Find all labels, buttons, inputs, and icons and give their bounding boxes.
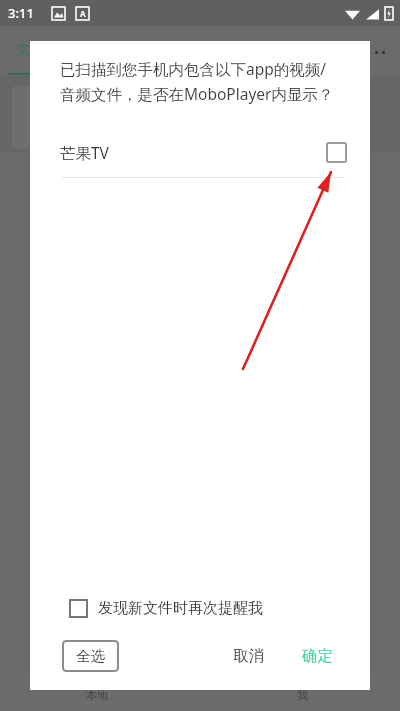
staticText: 已扫描到您手机内包含以下app的视频/ 音频文件，是否在MoboPlayer内显…	[60, 58, 334, 104]
staticText: 取消	[233, 646, 264, 666]
button[interactable]: 取消	[225, 640, 272, 672]
staticText: 发现新文件时再次提醒我	[98, 599, 263, 618]
staticText: 3:11	[8, 4, 34, 22]
other: 选择 芒果TV	[326, 142, 347, 163]
staticText: 确定	[302, 646, 333, 666]
staticText: 全选	[76, 647, 105, 665]
staticText: A	[80, 8, 86, 19]
button[interactable]: 发现新文件时再次提醒我	[30, 593, 370, 624]
button[interactable]: 芒果TV	[30, 127, 370, 177]
button[interactable]: 确定	[294, 640, 341, 672]
staticText: 本地	[86, 688, 108, 702]
button[interactable]: 全选	[62, 640, 119, 672]
staticText: 我	[297, 688, 308, 702]
staticText: 芒果TV	[60, 142, 109, 163]
staticText: 文件	[16, 40, 46, 59]
